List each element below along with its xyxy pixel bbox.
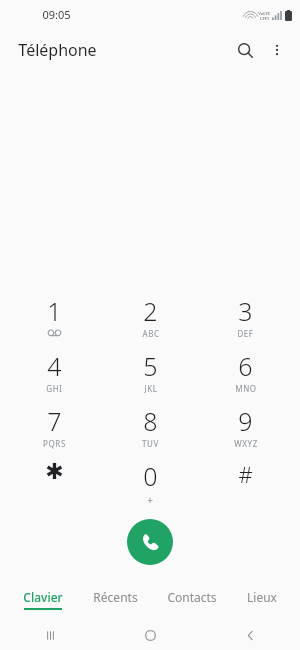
staticText: 09:05 [42,7,71,22]
staticText: 8 [143,404,158,438]
staticText: 1 [47,294,62,328]
staticText: 2 [143,294,158,328]
button[interactable]: Appeler [127,519,173,565]
staticText: LTE1 [260,16,269,21]
button[interactable]: 8 [109,404,192,450]
button[interactable]: 5 [109,349,192,395]
button[interactable]: Plus d'options [262,35,292,65]
button[interactable]: Clavier [17,587,69,612]
button[interactable]: # [204,459,287,505]
staticText: JKL [144,383,158,394]
button[interactable]: 3 [204,294,287,340]
button[interactable]: Récents [87,587,144,612]
staticText: Récents [93,589,138,605]
staticText: 6 [238,349,253,383]
staticText: WXYZ [234,438,258,449]
button[interactable]: 9 [204,404,287,450]
button[interactable]: Accueil [100,620,200,650]
staticText: Contacts [167,589,217,605]
staticText: 5 [143,349,158,383]
staticText: ✱ [45,459,64,485]
staticText: ABC [142,328,160,339]
staticText: DEF [237,328,254,339]
staticText: 7 [47,404,62,438]
staticText: GHI [46,383,63,394]
button[interactable]: Retour [200,620,300,650]
button[interactable]: Applications récentes [0,620,100,650]
button[interactable]: Contacts [161,587,223,612]
button[interactable]: 7 [13,404,96,450]
staticText: Clavier [23,589,63,605]
staticText: # [238,459,253,489]
button[interactable]: ✱ [13,459,96,505]
staticText: 3 [238,294,253,328]
button[interactable]: 0 [109,459,192,505]
staticText: Téléphone [18,39,97,61]
button[interactable]: 2 [109,294,192,340]
button[interactable]: 4 [13,349,96,395]
button[interactable]: 1 [13,294,96,340]
button[interactable]: 6 [204,349,287,395]
staticText: Lieux [247,589,277,605]
staticText: + [147,493,154,505]
button[interactable]: Rechercher [228,33,262,67]
staticText: TUV [142,438,159,449]
staticText: 9 [238,404,253,438]
staticText: 4 [47,349,62,383]
staticText: PQRS [43,438,66,449]
staticText: 0 [143,459,158,493]
staticText: VoLTE [258,11,270,16]
staticText: MNO [235,383,257,394]
button[interactable]: Lieux [241,587,283,612]
